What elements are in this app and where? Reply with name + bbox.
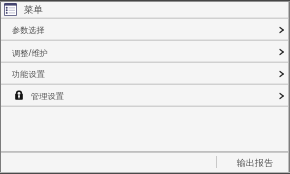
staticText: 功能设置 [12, 69, 45, 79]
staticText: 调整/维护 [12, 47, 48, 58]
button[interactable]: 参数选择 [1, 18, 288, 40]
button[interactable]: 调整/维护 [1, 40, 288, 62]
button[interactable]: 功能设置 [1, 62, 288, 84]
staticText: 管理设置 [31, 91, 64, 101]
staticText: 参数选择 [12, 25, 45, 35]
button[interactable]: 菜单 Menu [1, 2, 288, 18]
button[interactable]: 管理设置 [1, 84, 288, 106]
staticText: 菜单 [24, 4, 44, 16]
staticText: 输出报告 [237, 157, 273, 168]
button[interactable]: 输出报告 [217, 152, 288, 172]
